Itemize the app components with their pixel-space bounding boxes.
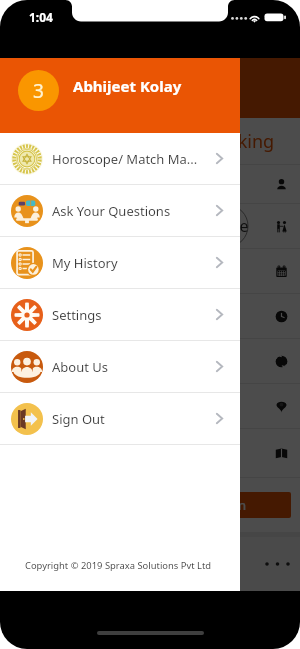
button[interactable] [0,429,300,477]
button[interactable] [0,339,300,383]
button[interactable] [0,165,300,203]
staticText: About Us [52,358,109,376]
staticText: Horoscope/ Match Making [51,129,275,154]
staticText: Horoscope/ Match Ma... [52,150,198,168]
staticText: Copyright © 2019 Spraxa Solutions Pvt Lt… [25,559,212,572]
staticText: 3 [33,78,44,104]
staticText: My History [52,254,118,272]
staticText: Abhijeet Kolay [73,76,182,96]
staticText: Ask Question [164,496,247,514]
staticText: Ask Your Questions [52,202,171,220]
button[interactable] [0,294,300,338]
staticText: Sign Out [52,410,105,428]
button[interactable] [0,384,300,428]
staticText: 1:04 [29,9,53,25]
button[interactable]: Sign Out [0,393,240,444]
button[interactable]: My History [0,237,240,288]
button[interactable]: Ask Question [120,492,291,518]
button[interactable]: Ask Your Questions [0,185,240,236]
staticText: Kundli [44,77,93,99]
staticText: Settings [52,306,102,324]
button[interactable] [0,249,300,293]
staticText: Male [212,215,249,237]
button[interactable]: 3 [0,58,240,133]
button[interactable]: About Us [0,341,240,392]
button[interactable]: Settings [0,289,240,340]
button[interactable]: Male [0,204,300,248]
button[interactable]: Horoscope/ Match Ma... [0,133,240,184]
